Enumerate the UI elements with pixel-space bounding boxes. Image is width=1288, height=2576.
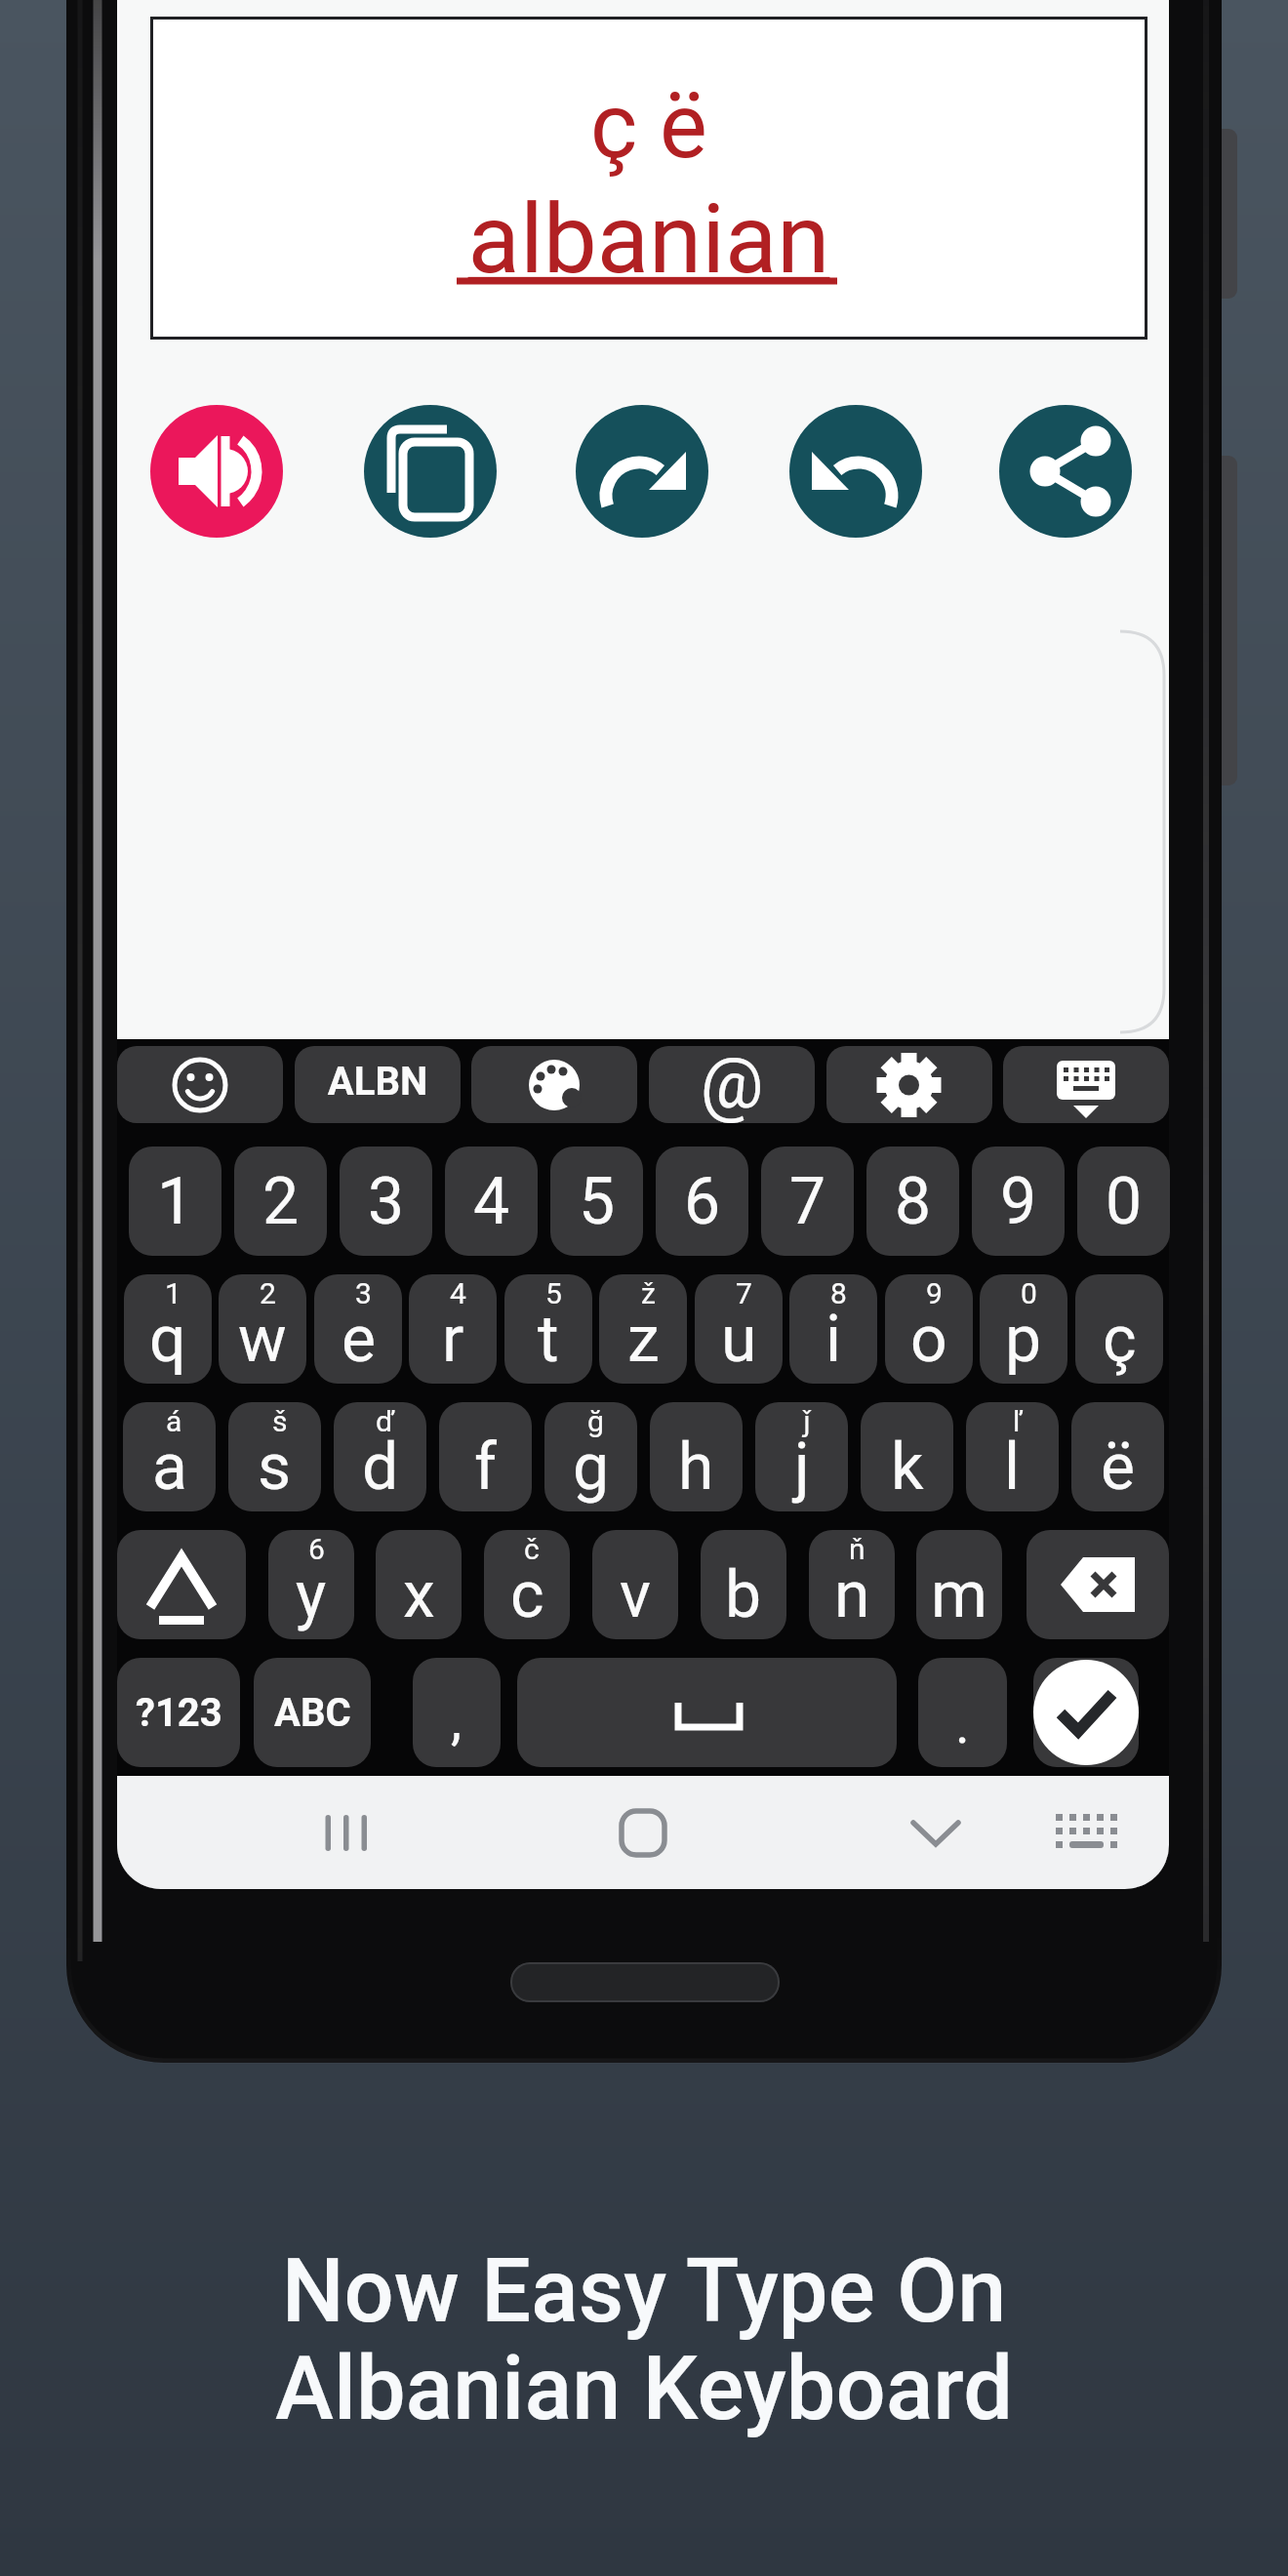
button[interactable]: 9 [972, 1147, 1065, 1256]
staticText: á [166, 1404, 182, 1438]
button[interactable]: t [504, 1274, 592, 1384]
staticText: ALBN [295, 1059, 461, 1105]
button[interactable]: s [228, 1402, 321, 1511]
staticText: ľ [1013, 1404, 1023, 1438]
button[interactable]: ABC [254, 1658, 371, 1767]
button[interactable] [1026, 1530, 1169, 1639]
button[interactable]: r [409, 1274, 497, 1384]
button[interactable] [576, 405, 708, 538]
button[interactable] [471, 1046, 637, 1123]
button[interactable]: w [219, 1274, 306, 1384]
staticText: ç [1103, 1302, 1137, 1377]
staticText: p [1005, 1302, 1042, 1377]
button[interactable]: n [809, 1530, 895, 1639]
button[interactable]: m [916, 1530, 1002, 1639]
staticText: a [152, 1429, 187, 1505]
button[interactable]: 7 [761, 1147, 854, 1256]
button[interactable]: d [334, 1402, 426, 1511]
button[interactable]: , [413, 1658, 501, 1767]
button[interactable] [887, 1791, 985, 1873]
button[interactable]: v [592, 1530, 678, 1639]
staticText: u [721, 1302, 757, 1377]
button[interactable]: i [789, 1274, 877, 1384]
staticText: 7 [789, 1164, 826, 1239]
staticText: 4 [473, 1164, 510, 1239]
button[interactable]: ë [1071, 1402, 1164, 1511]
button[interactable]: x [376, 1530, 462, 1639]
button[interactable] [1037, 1791, 1135, 1873]
staticText: c [510, 1557, 544, 1632]
button[interactable]: 1 [129, 1147, 221, 1256]
staticText: b [725, 1557, 762, 1632]
button[interactable]: e [314, 1274, 402, 1384]
button[interactable]: a [123, 1402, 216, 1511]
button[interactable] [594, 1791, 692, 1873]
button[interactable]: j [755, 1402, 848, 1511]
staticText: ď [376, 1404, 395, 1438]
button[interactable]: y [268, 1530, 354, 1639]
staticText: 5 [579, 1164, 616, 1239]
staticText: i [825, 1302, 842, 1377]
button[interactable] [649, 1046, 815, 1123]
button[interactable] [299, 1791, 396, 1873]
button[interactable]: 5 [550, 1147, 643, 1256]
staticText: y [296, 1557, 327, 1632]
button[interactable] [826, 1046, 992, 1123]
staticText: ?123 [136, 1690, 222, 1736]
button[interactable]: . [918, 1658, 1007, 1767]
staticText: v [620, 1557, 651, 1632]
button[interactable]: 0 [1077, 1147, 1170, 1256]
button[interactable]: u [695, 1274, 783, 1384]
button[interactable] [295, 1046, 461, 1123]
button[interactable]: 3 [340, 1147, 432, 1256]
staticText: 0 [1021, 1276, 1037, 1310]
staticText: 8 [895, 1164, 932, 1239]
button[interactable]: 4 [445, 1147, 538, 1256]
button[interactable]: p [980, 1274, 1067, 1384]
button[interactable]: 6 [656, 1147, 748, 1256]
staticText: k [891, 1429, 924, 1505]
button[interactable]: b [701, 1530, 786, 1639]
staticText: 0 [1106, 1164, 1143, 1239]
button[interactable]: k [861, 1402, 953, 1511]
staticText: j [794, 1429, 810, 1505]
button[interactable] [117, 1046, 283, 1123]
button[interactable]: g [544, 1402, 637, 1511]
staticText: z [627, 1302, 660, 1377]
button[interactable] [1003, 1046, 1169, 1123]
staticText: 2 [260, 1276, 276, 1310]
staticText: . [955, 1692, 970, 1756]
button[interactable] [999, 405, 1132, 538]
button[interactable]: 8 [866, 1147, 959, 1256]
button[interactable]: c [484, 1530, 570, 1639]
staticText: 3 [368, 1164, 405, 1239]
staticText: , [451, 1688, 463, 1752]
button[interactable] [117, 1530, 246, 1639]
staticText: 8 [830, 1276, 847, 1310]
button[interactable]: ?123 [117, 1658, 240, 1767]
staticText: w [238, 1302, 287, 1377]
staticText: @ [649, 1042, 815, 1124]
button[interactable]: 2 [234, 1147, 327, 1256]
button[interactable]: o [885, 1274, 973, 1384]
staticText: ABC [274, 1690, 351, 1736]
staticText: albanian [150, 183, 1147, 296]
button[interactable] [1033, 1658, 1139, 1767]
button[interactable] [517, 1658, 897, 1767]
staticText: ž [641, 1276, 656, 1310]
button[interactable]: q [124, 1274, 212, 1384]
button[interactable]: l [966, 1402, 1059, 1511]
staticText: s [258, 1429, 292, 1505]
button[interactable]: z [599, 1274, 687, 1384]
staticText: 1 [157, 1164, 194, 1239]
button[interactable] [364, 405, 497, 538]
staticText: f [474, 1429, 497, 1505]
button[interactable]: ç [1075, 1274, 1163, 1384]
button[interactable] [150, 17, 1147, 340]
staticText: x [403, 1557, 435, 1632]
button[interactable] [789, 405, 922, 538]
staticText: o [910, 1302, 947, 1377]
button[interactable]: f [439, 1402, 532, 1511]
button[interactable] [150, 405, 283, 538]
button[interactable]: h [650, 1402, 743, 1511]
